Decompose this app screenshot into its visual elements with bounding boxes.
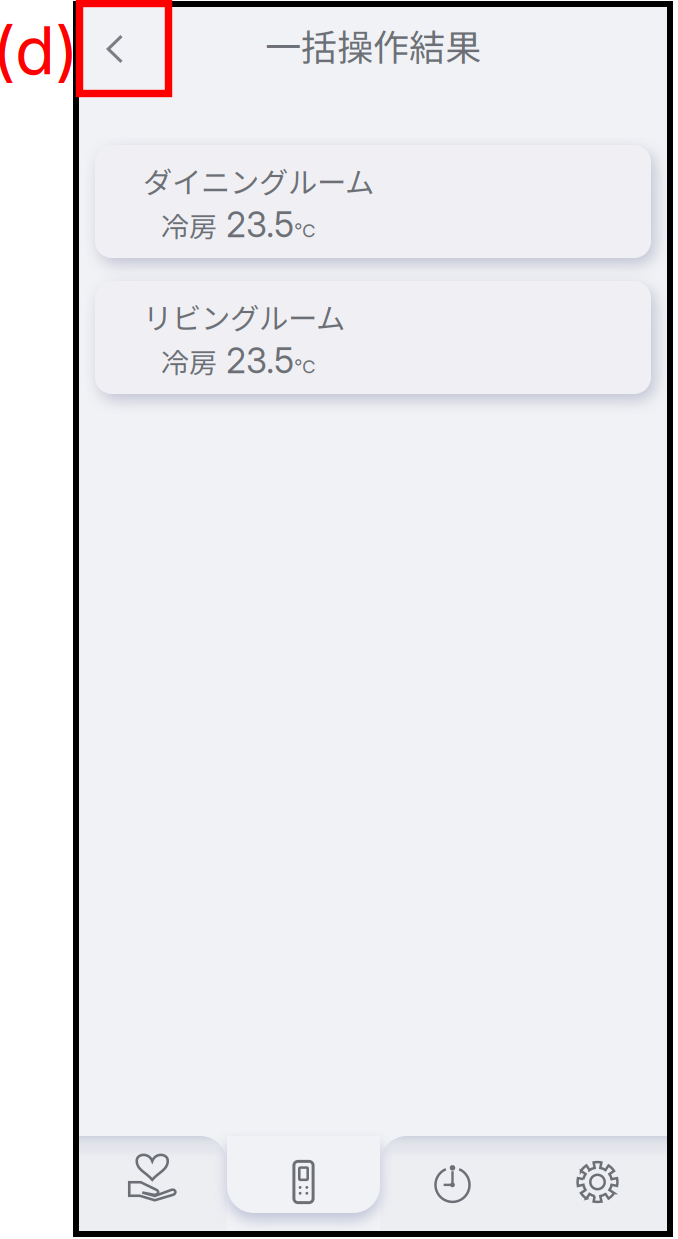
staticText: ダイニングルーム xyxy=(143,159,374,202)
button[interactable]: Favorites xyxy=(76,1136,227,1234)
staticText: 23.5 xyxy=(217,340,294,382)
staticText: 一括操作結果 xyxy=(265,19,481,71)
button[interactable]: リビングルーム xyxy=(95,281,651,394)
button[interactable]: Timer xyxy=(380,1136,525,1234)
staticText: 冷房 xyxy=(161,341,217,381)
staticText: °C xyxy=(294,355,316,378)
staticText: 23.5 xyxy=(217,204,294,246)
button[interactable]: ダイニングルーム xyxy=(95,145,651,258)
staticText: 冷房 xyxy=(161,205,217,245)
button[interactable]: Settings xyxy=(525,1136,670,1234)
staticText: (d) xyxy=(0,11,79,90)
button[interactable]: Remote xyxy=(227,1136,380,1234)
staticText: °C xyxy=(294,219,316,242)
staticText: リビングルーム xyxy=(143,295,345,338)
button[interactable]: Back xyxy=(76,4,169,94)
